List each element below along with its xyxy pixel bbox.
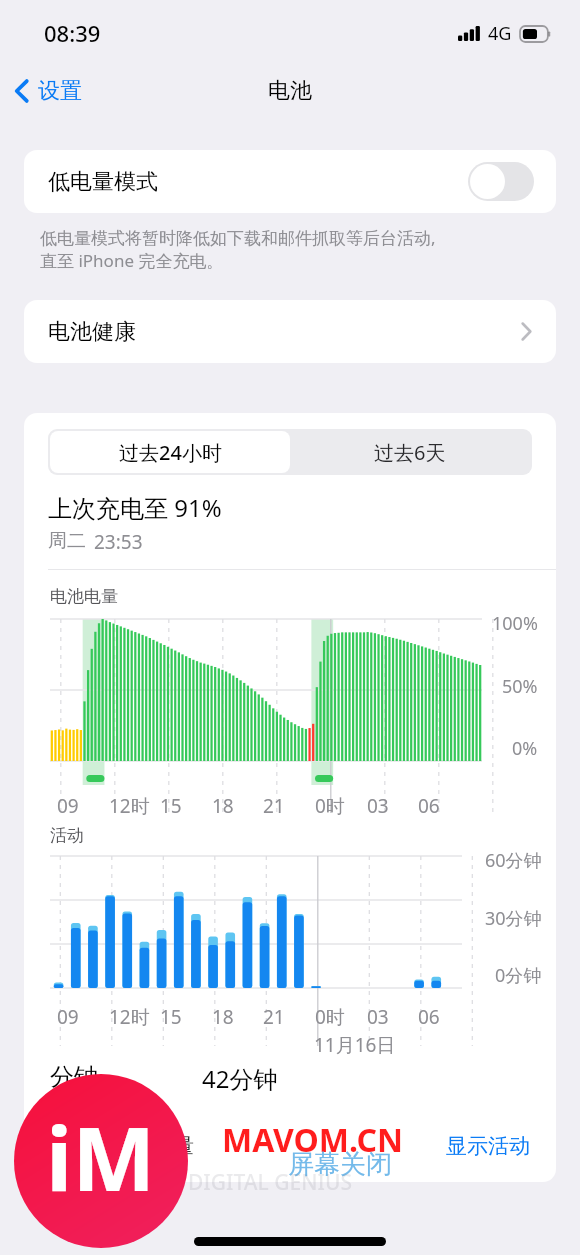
staticText: 0时 [315,1004,345,1030]
staticText: 18 [212,793,234,819]
staticText: App的电池用量 [50,1131,195,1160]
staticText: 15 [160,1004,182,1030]
staticText: iM [46,1097,156,1217]
staticText: 21 [263,1004,285,1030]
staticText: 电池健康 [48,318,136,346]
staticText: 电池 [268,77,312,105]
button[interactable]: 设置 [0,71,94,111]
staticText: 50% [502,674,538,699]
staticText: 03 [367,1004,389,1030]
staticText: 0时 [315,793,345,819]
staticText: 12时 [109,793,150,819]
staticText: MAVOM.CN [222,1118,403,1162]
staticText: 显示活动 [446,1133,530,1159]
staticText: 低电量模式将暂时降低如下载和邮件抓取等后台活动, [40,226,436,249]
staticText: DIGITAL GENIUS [188,1168,352,1197]
staticText: 低电量模式 [48,168,158,196]
staticText: 周二 [48,529,86,553]
button[interactable]: 电池健康 [24,300,556,363]
button[interactable]: 低电量模式 [24,150,556,213]
button[interactable]: 低电量模式 开关 [468,162,534,201]
staticText: 0分钟 [495,963,542,988]
staticText: 分钟 [50,1062,98,1092]
button[interactable]: 显示活动 [446,1133,530,1159]
staticText: 设置 [38,77,82,105]
staticText: 23:53 [94,529,143,555]
staticText: 21 [263,793,285,819]
staticText: 100% [492,611,538,636]
staticText: 60分钟 [485,848,542,873]
staticText: 12时 [109,1004,150,1030]
staticText: 0% [512,736,538,761]
staticText: 屏幕关闭 [288,1148,392,1181]
staticText: 直至 iPhone 完全充电。 [40,249,224,272]
button[interactable]: 过去24小时 [50,431,290,473]
staticText: 4G [488,21,512,46]
staticText: 03 [367,793,389,819]
staticText: 过去6天 [374,439,446,466]
staticText: 电池电量 [50,586,118,607]
staticText: 11月16日 [314,1032,396,1058]
staticText: 18 [212,1004,234,1030]
staticText: 06 [418,1004,440,1030]
button[interactable]: 过去6天 [290,431,530,473]
staticText: 30分钟 [485,906,542,931]
staticText: 09 [57,1004,79,1030]
staticText: 08:39 [44,18,101,48]
staticText: 09 [57,793,79,819]
staticText: 42分钟 [202,1062,278,1095]
staticText: 过去24小时 [119,439,222,466]
staticText: 上次充电至 91% [48,491,222,524]
staticText: 15 [160,793,182,819]
staticText: 06 [418,793,440,819]
staticText: 活动 [50,825,84,846]
